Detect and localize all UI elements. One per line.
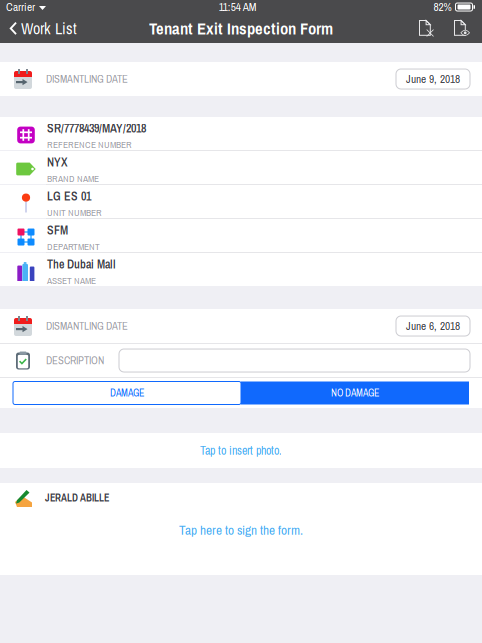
button[interactable]: NO DAMAGE (241, 381, 469, 404)
staticText: June 9, 2018 (406, 71, 460, 87)
staticText: ASSET NAME (47, 274, 96, 287)
staticText: DISMANTLING DATE (46, 319, 128, 333)
staticText: NYX (47, 154, 68, 170)
staticText: June 6, 2018 (406, 318, 460, 334)
staticText: DAMAGE (110, 386, 144, 400)
staticText: Tenant Exit Inspection Form (149, 17, 333, 40)
staticText: The Dubai Mall (47, 256, 116, 272)
staticText: LG ES 01 (47, 188, 91, 204)
staticText: DESCRIPTION (46, 353, 104, 368)
button[interactable]: June 9, 2018 (396, 69, 470, 89)
button[interactable]: June 6, 2018 (396, 316, 470, 336)
staticText: Tap to insert photo. (200, 442, 282, 459)
staticText: BRAND NAME (47, 172, 99, 185)
staticText: JERALD ABILLE (45, 491, 109, 505)
staticText: UNIT NUMBER (47, 206, 102, 219)
button[interactable]: Description (119, 349, 470, 372)
staticText: Work List (21, 18, 77, 39)
button[interactable]: DAMAGE (13, 381, 241, 404)
staticText: Tap here to sign the form. (179, 521, 303, 539)
staticText: REFERENCE NUMBER (47, 138, 132, 151)
staticText: SFM (47, 222, 68, 238)
staticText: DISMANTLING DATE (46, 72, 128, 86)
button[interactable]: Work List (0, 14, 85, 43)
button[interactable]: The Dubai Mall (0, 253, 482, 286)
staticText: Carrier (6, 0, 35, 15)
button[interactable]: Preview form (438, 14, 473, 43)
button[interactable]: SR/7778439/MAY/2018 (0, 117, 482, 150)
button[interactable]: LG ES 01 (0, 185, 482, 218)
staticText: 11:54 AM (219, 0, 257, 15)
button[interactable]: Tap here to sign the form. (0, 513, 482, 547)
staticText: NO DAMAGE (331, 386, 379, 400)
button[interactable]: Tap to insert photo. (0, 433, 482, 468)
staticText: 82% (433, 0, 451, 15)
button[interactable]: SFM (0, 219, 482, 252)
staticText: DEPARTMENT (47, 240, 100, 253)
staticText: SR/7778439/MAY/2018 (47, 120, 146, 136)
button[interactable]: NYX (0, 151, 482, 184)
button[interactable]: Delete form (415, 14, 438, 43)
